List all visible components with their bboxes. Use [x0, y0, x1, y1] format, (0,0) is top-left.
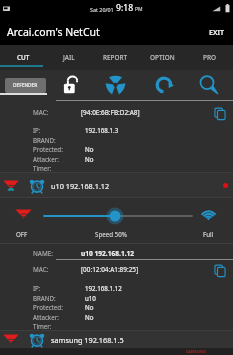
staticText: Attacker:: [33, 155, 59, 163]
staticText: NAME:: [33, 249, 54, 258]
button[interactable]: REPORT: [92, 45, 139, 70]
button[interactable]: CUT: [0, 45, 46, 70]
staticText: CUT: [17, 53, 30, 62]
staticText: samsung 192.168.1.5: [51, 335, 124, 345]
staticText: No: [85, 155, 94, 163]
staticText: MAC:: [33, 265, 49, 274]
staticText: EXIT: [209, 27, 224, 37]
staticText: Timer:: [33, 322, 52, 330]
staticText: PM: [135, 6, 143, 13]
button[interactable]: Search: [196, 70, 222, 99]
button[interactable]: DEFENDER: [5, 78, 46, 93]
staticText: Arcai.com's NetCut: [7, 25, 100, 39]
staticText: OPTION: [150, 53, 175, 62]
staticText: BRAND:: [33, 294, 56, 302]
button[interactable]: Copy MAC address: [211, 105, 229, 123]
staticText: REPORT: [103, 53, 128, 62]
button[interactable]: u10 192.168.1.12: [0, 172, 233, 197]
staticText: Sat 20/01: [90, 6, 114, 13]
button[interactable]: Refresh: [151, 70, 177, 99]
button[interactable]: PRO: [186, 45, 233, 70]
staticText: Attacker:: [33, 313, 59, 321]
staticText: 192.168.1.12: [85, 284, 122, 292]
staticText: u10 192.168.1.12: [51, 181, 110, 191]
staticText: Speed 50%: [95, 230, 127, 238]
staticText: No: [85, 313, 94, 321]
staticText: Protected:: [33, 303, 63, 311]
staticText: PRO: [203, 53, 216, 62]
staticText: BRAND:: [33, 136, 56, 144]
staticText: IP:: [33, 126, 41, 134]
staticText: Protected:: [33, 145, 63, 153]
staticText: MAC:: [33, 108, 49, 117]
staticText: JAIL: [63, 53, 75, 62]
staticText: u10: [85, 294, 96, 302]
button[interactable]: JAIL: [46, 45, 92, 70]
button[interactable]: Unlock: [57, 70, 83, 99]
button[interactable]: Speed slider: [40, 207, 196, 225]
staticText: SAMSUNG: [186, 349, 207, 354]
staticText: u10 192.168.1.12: [81, 249, 135, 258]
button[interactable]: OPTION: [139, 45, 186, 70]
staticText: Full: [203, 230, 214, 238]
staticText: 192.168.1.3: [85, 126, 119, 134]
staticText: OFF: [16, 230, 28, 238]
staticText: Timer:: [33, 164, 52, 172]
button[interactable]: samsung 192.168.1.5: [0, 330, 233, 348]
staticText: No: [85, 145, 94, 153]
staticText: [00:12:04:A1:89:25]: [81, 265, 139, 274]
staticText: DEFENDER: [13, 82, 38, 89]
staticText: IP:: [33, 284, 41, 292]
button[interactable]: EXIT: [200, 16, 233, 45]
staticText: No: [85, 303, 94, 311]
staticText: [94:0E:6B:FB:D2:A8]: [81, 108, 140, 117]
button[interactable]: Defender: [102, 70, 128, 99]
button[interactable]: Copy MAC address: [211, 262, 229, 280]
staticText: 9:18: [116, 2, 134, 14]
